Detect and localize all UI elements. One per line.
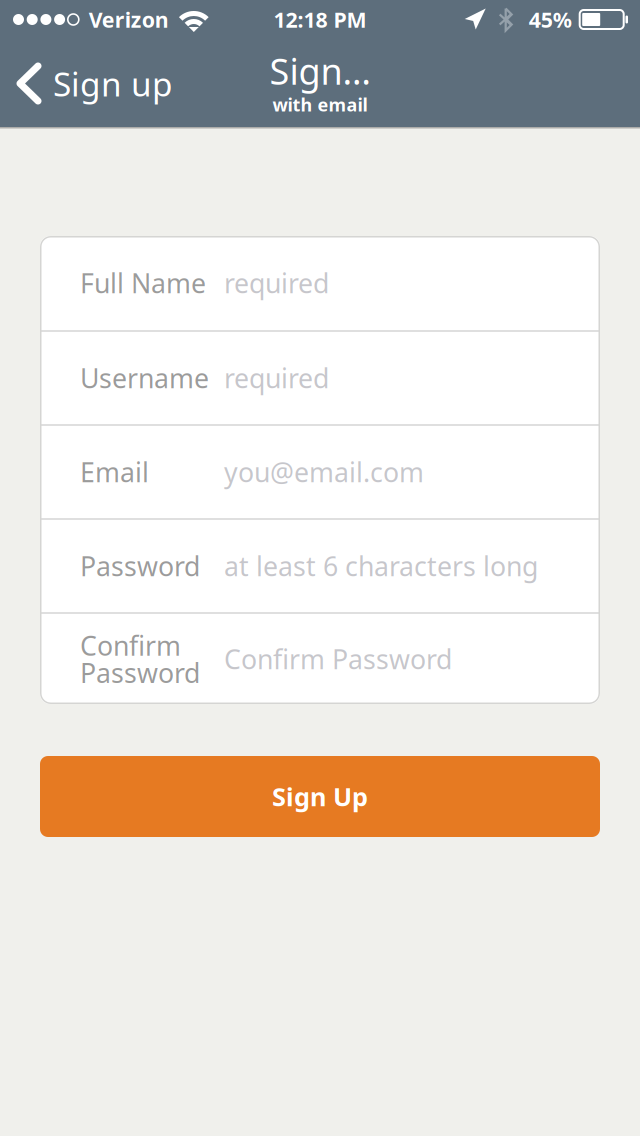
button[interactable]: Sign Up <box>40 756 600 837</box>
staticText: with email <box>272 92 367 117</box>
staticText: you@email.com <box>224 454 424 490</box>
staticText: required <box>224 360 329 396</box>
staticText: required <box>224 265 329 301</box>
staticText: Sign Up <box>272 779 368 814</box>
staticText: Sign up <box>53 61 173 106</box>
staticText: Sign… <box>269 46 370 95</box>
staticText: Full Name <box>80 265 206 301</box>
staticText: Confirm Password <box>80 627 200 691</box>
staticText: Confirm Password <box>224 641 452 677</box>
staticText: at least 6 characters long <box>224 548 538 584</box>
staticText: 45% <box>529 5 572 34</box>
staticText: Verizon <box>89 5 169 34</box>
staticText: Username <box>80 360 209 396</box>
staticText: Password <box>80 548 200 584</box>
staticText: Email <box>80 454 149 490</box>
staticText: 12:18 PM <box>273 5 366 34</box>
button[interactable]: Sign up <box>0 39 187 127</box>
